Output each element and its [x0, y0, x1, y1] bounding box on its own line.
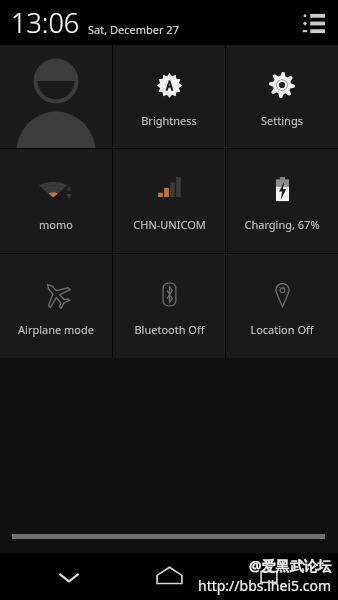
staticText: 13:06: [11, 4, 80, 41]
staticText: @爱黑武论坛: [249, 556, 332, 575]
staticText: momo: [39, 217, 73, 232]
staticText: Charging, 67%: [244, 217, 320, 232]
button[interactable]: momo: [0, 149, 112, 253]
button[interactable]: Bluetooth Off: [113, 254, 225, 358]
button[interactable]: Recent apps: [238, 553, 300, 600]
staticText: Sat, December 27: [88, 22, 179, 37]
staticText: Location Off: [250, 322, 314, 337]
staticText: CHN-UNICOM: [133, 217, 206, 232]
button[interactable]: Collapse: [38, 553, 100, 600]
button[interactable]: Charging, 67%: [226, 149, 338, 253]
staticText: Bluetooth Off: [134, 322, 205, 337]
button[interactable]: Settings: [226, 45, 338, 148]
button[interactable]: Home: [138, 553, 200, 600]
button[interactable]: Profile: [0, 45, 112, 148]
staticText: Airplane mode: [18, 322, 94, 337]
staticText: http://bbs.ihei5.com: [198, 576, 332, 595]
button[interactable]: Airplane mode: [0, 254, 112, 358]
button[interactable]: Brightness: [113, 45, 225, 148]
staticText: Brightness: [141, 113, 197, 128]
button[interactable]: Location Off: [226, 254, 338, 358]
button[interactable]: CHN-UNICOM: [113, 149, 225, 253]
button[interactable]: Quick settings list: [296, 6, 330, 40]
staticText: Settings: [261, 113, 303, 128]
